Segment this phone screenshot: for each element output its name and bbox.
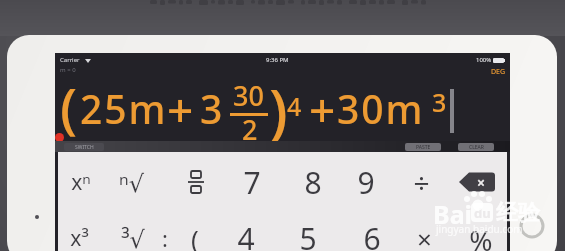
- button[interactable]: 5: [286, 216, 330, 251]
- staticText: 30m: [337, 82, 425, 135]
- staticText: (: [60, 69, 78, 144]
- staticText: 6: [363, 218, 381, 251]
- button[interactable]: SWITCH: [64, 143, 104, 151]
- staticText: 经验: [496, 199, 540, 227]
- staticText: jingyan.baidu.com: [436, 222, 523, 236]
- staticText: %: [469, 221, 493, 251]
- staticText: 30: [233, 77, 264, 114]
- staticText: 5: [299, 218, 317, 251]
- button[interactable]: PASTE: [405, 143, 441, 151]
- staticText: 25m: [80, 82, 168, 135]
- staticText: +: [309, 78, 336, 141]
- button[interactable]: ⁿ√: [109, 160, 153, 204]
- staticText: 3: [432, 85, 447, 119]
- staticText: 9:36 PM: [266, 56, 289, 64]
- button[interactable]: CLEAR: [458, 143, 494, 151]
- button[interactable]: ³√: [111, 216, 155, 251]
- button[interactable]: (: [173, 216, 217, 251]
- staticText: ): [269, 69, 288, 151]
- staticText: +: [167, 78, 194, 141]
- staticText: 4: [287, 89, 302, 123]
- button[interactable]: 4: [224, 216, 268, 251]
- staticText: :: [162, 223, 168, 251]
- staticText: ×: [477, 173, 486, 192]
- button[interactable]: x³: [57, 216, 101, 251]
- button[interactable]: %: [459, 218, 503, 251]
- button[interactable]: 6: [350, 216, 394, 251]
- staticText: 100%: [476, 56, 492, 64]
- staticText: du: [474, 204, 491, 222]
- staticText: 7: [243, 162, 261, 203]
- staticText: Carrier: [60, 56, 80, 64]
- staticText: ³√: [121, 222, 145, 251]
- staticText: PASTE: [416, 144, 431, 151]
- staticText: SWITCH: [75, 144, 94, 151]
- button[interactable]: 7: [230, 160, 274, 204]
- staticText: 2: [242, 111, 258, 148]
- staticText: 8: [304, 162, 322, 203]
- button[interactable]: ÷: [399, 160, 443, 204]
- button[interactable]: 8: [291, 160, 335, 204]
- staticText: 9: [357, 162, 375, 203]
- staticText: DEG: [491, 67, 506, 77]
- staticText: ⁿ√: [119, 166, 144, 199]
- button[interactable]: [174, 160, 218, 204]
- staticText: m = 0: [60, 66, 76, 74]
- staticText: xⁿ: [71, 168, 91, 197]
- button[interactable]: :: [143, 216, 187, 251]
- button[interactable]: 9: [344, 160, 388, 204]
- staticText: ×: [417, 221, 432, 251]
- staticText: Bai: [433, 197, 473, 231]
- button[interactable]: ×: [455, 160, 499, 204]
- staticText: CLEAR: [469, 144, 484, 151]
- staticText: x³: [70, 224, 89, 251]
- button[interactable]: ×: [402, 216, 446, 251]
- staticText: 4: [237, 218, 255, 251]
- staticText: (: [191, 221, 199, 251]
- button[interactable]: xⁿ: [59, 160, 103, 204]
- staticText: ÷: [413, 163, 430, 201]
- staticText: 3: [200, 82, 223, 135]
